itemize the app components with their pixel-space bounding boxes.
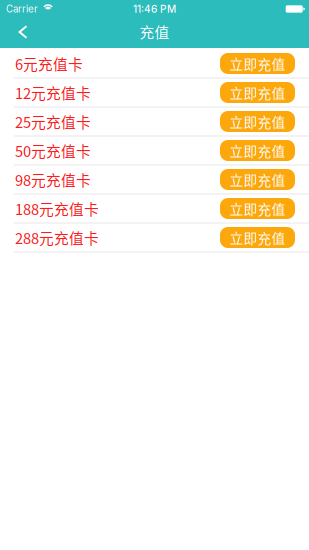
staticText: 立即充值 [229, 141, 285, 160]
staticText: 立即充值 [229, 228, 285, 247]
button[interactable]: 立即充值 [220, 227, 295, 248]
staticText: 充值 [139, 21, 169, 42]
staticText: 50元充值卡 [15, 140, 91, 161]
staticText: 98元充值卡 [15, 169, 91, 190]
staticText: 288元充值卡 [15, 227, 99, 248]
staticText: 188元充值卡 [15, 198, 99, 219]
button[interactable]: 立即充值 [220, 140, 295, 161]
staticText: 25元充值卡 [15, 111, 91, 132]
staticText: 11:46 PM [133, 3, 176, 15]
button[interactable]: Back [0, 18, 38, 46]
staticText: 立即充值 [229, 199, 285, 218]
button[interactable]: 立即充值 [220, 111, 295, 132]
button[interactable]: 立即充值 [220, 82, 295, 103]
staticText: 立即充值 [229, 83, 285, 102]
staticText: 12元充值卡 [15, 82, 91, 103]
button[interactable]: 立即充值 [220, 53, 295, 74]
staticText: 立即充值 [229, 170, 285, 189]
staticText: 立即充值 [229, 112, 285, 131]
button[interactable]: 立即充值 [220, 169, 295, 190]
button[interactable]: 立即充值 [220, 198, 295, 219]
staticText: 6元充值卡 [15, 53, 83, 74]
staticText: 立即充值 [229, 54, 285, 73]
staticText: Carrier [6, 3, 38, 15]
